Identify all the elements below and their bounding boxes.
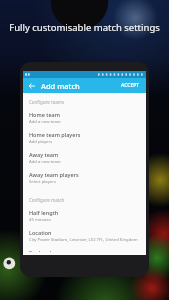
button[interactable]: Away team players bbox=[23, 168, 146, 188]
button[interactable]: Away team bbox=[23, 148, 146, 168]
staticText: Add players bbox=[29, 139, 53, 145]
button[interactable]: Home team players bbox=[23, 128, 146, 148]
staticText: Half length bbox=[29, 209, 59, 216]
staticText: Away team bbox=[29, 151, 59, 158]
staticText: Select players bbox=[29, 179, 56, 185]
staticText: Home team bbox=[29, 111, 60, 118]
button[interactable]: ACCEPT bbox=[119, 80, 142, 91]
staticText: ACCEPT bbox=[121, 82, 140, 89]
staticText: Add a new team bbox=[29, 159, 61, 165]
staticText: Add a new team bbox=[29, 119, 61, 125]
staticText: Location bbox=[29, 229, 52, 236]
staticText: Configure teams bbox=[29, 99, 65, 105]
button[interactable]: Foul codes bbox=[23, 246, 146, 255]
staticText: Foul codes bbox=[29, 249, 57, 252]
button[interactable]: Home team bbox=[23, 108, 146, 128]
button[interactable]: Back bbox=[27, 81, 36, 90]
staticText: Home team players bbox=[29, 131, 81, 138]
staticText: 45 minutes bbox=[29, 217, 51, 223]
staticText: Away team players bbox=[29, 171, 79, 178]
staticText: City Power Stadium, Leicester, LE2 7FL, … bbox=[29, 237, 138, 243]
button[interactable]: Half length bbox=[23, 206, 146, 226]
staticText: Fully customisable match settings bbox=[9, 21, 160, 34]
staticText: Add match bbox=[41, 81, 80, 91]
button[interactable]: Location bbox=[23, 226, 146, 246]
staticText: Configure match bbox=[29, 197, 65, 203]
